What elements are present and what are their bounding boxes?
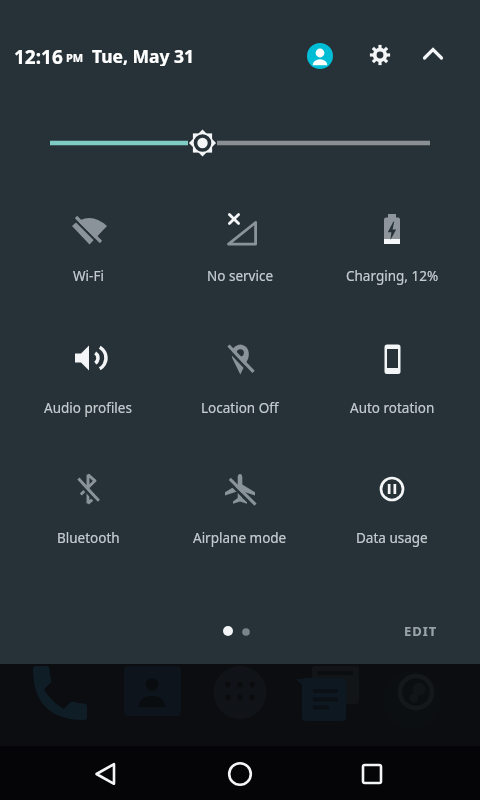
button[interactable]: No service [164, 191, 316, 290]
button[interactable]: Data usage [316, 451, 468, 552]
staticText: Wi-Fi [73, 267, 104, 285]
button[interactable]: Airplane mode [164, 451, 316, 552]
staticText: Audio profiles [44, 399, 132, 417]
staticText: EDIT [404, 622, 438, 640]
button[interactable]: Audio profiles [12, 320, 164, 422]
button[interactable]: Bluetooth [12, 451, 164, 552]
button[interactable] [367, 42, 393, 68]
button[interactable] [307, 43, 333, 69]
staticText: Tue, May 31 [92, 44, 195, 66]
button[interactable] [347, 748, 397, 798]
staticText: PM [66, 50, 84, 65]
button[interactable]: Location Off [164, 320, 316, 422]
staticText: Auto rotation [350, 399, 435, 417]
staticText: No service [207, 267, 274, 285]
staticText: Airplane mode [193, 529, 287, 547]
button[interactable] [215, 748, 265, 798]
button[interactable] [81, 748, 131, 798]
staticText: Bluetooth [57, 529, 120, 547]
button[interactable]: Wi-Fi [12, 191, 164, 290]
button[interactable] [421, 42, 445, 66]
staticText: Charging, 12% [346, 267, 439, 285]
staticText: Data usage [356, 529, 428, 547]
button[interactable]: Charging, 12% [316, 191, 468, 290]
staticText: Location Off [201, 399, 279, 417]
staticText: 12:16 [14, 44, 63, 66]
button[interactable]: EDIT [385, 616, 457, 646]
button[interactable]: Auto rotation [316, 320, 468, 422]
